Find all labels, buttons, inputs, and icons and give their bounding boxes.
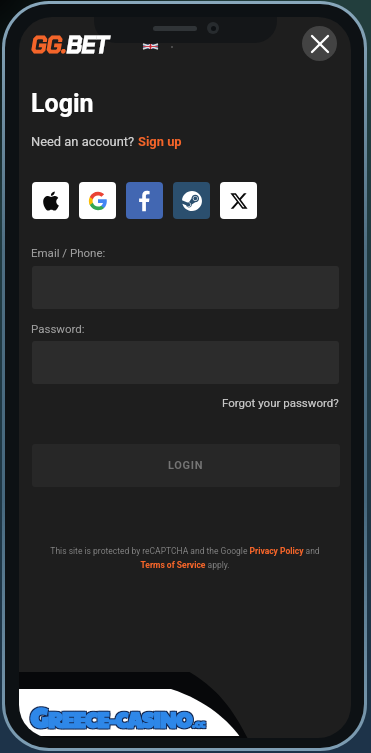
- button[interactable]: Close: [302, 26, 337, 61]
- staticText: Need an account?: [31, 134, 138, 149]
- button[interactable]: Sign in with Steam: [173, 182, 210, 219]
- staticText: GREECE-CASINO.cc: [29, 698, 204, 737]
- button[interactable]: Sign in with Facebook: [126, 182, 163, 219]
- staticText: LOGIN: [168, 459, 204, 472]
- other: Language: [143, 44, 158, 49]
- staticText: GREECE-CASINO.cc: [31, 698, 206, 737]
- staticText: This site is protected by reCAPTCHA and …: [41, 546, 329, 570]
- staticText: GREECE-CASINO.cc: [31, 696, 206, 735]
- staticText: Password:: [31, 322, 85, 335]
- staticText: Email / Phone:: [31, 246, 106, 259]
- button[interactable]: Sign in with X: [220, 182, 257, 219]
- staticText: GREECE-CASINO.cc: [30, 697, 205, 736]
- staticText: GG.BET: [31, 30, 109, 60]
- button[interactable]: LOGIN: [32, 444, 340, 487]
- button[interactable]: Sign in with Google: [79, 182, 116, 219]
- staticText: Login: [31, 89, 94, 118]
- button[interactable]: Sign in with Apple: [32, 182, 69, 219]
- staticText: GREECE-CASINO.cc: [29, 696, 204, 735]
- button[interactable]: Sign up: [138, 134, 182, 149]
- button[interactable]: Forgot your password?: [222, 396, 339, 409]
